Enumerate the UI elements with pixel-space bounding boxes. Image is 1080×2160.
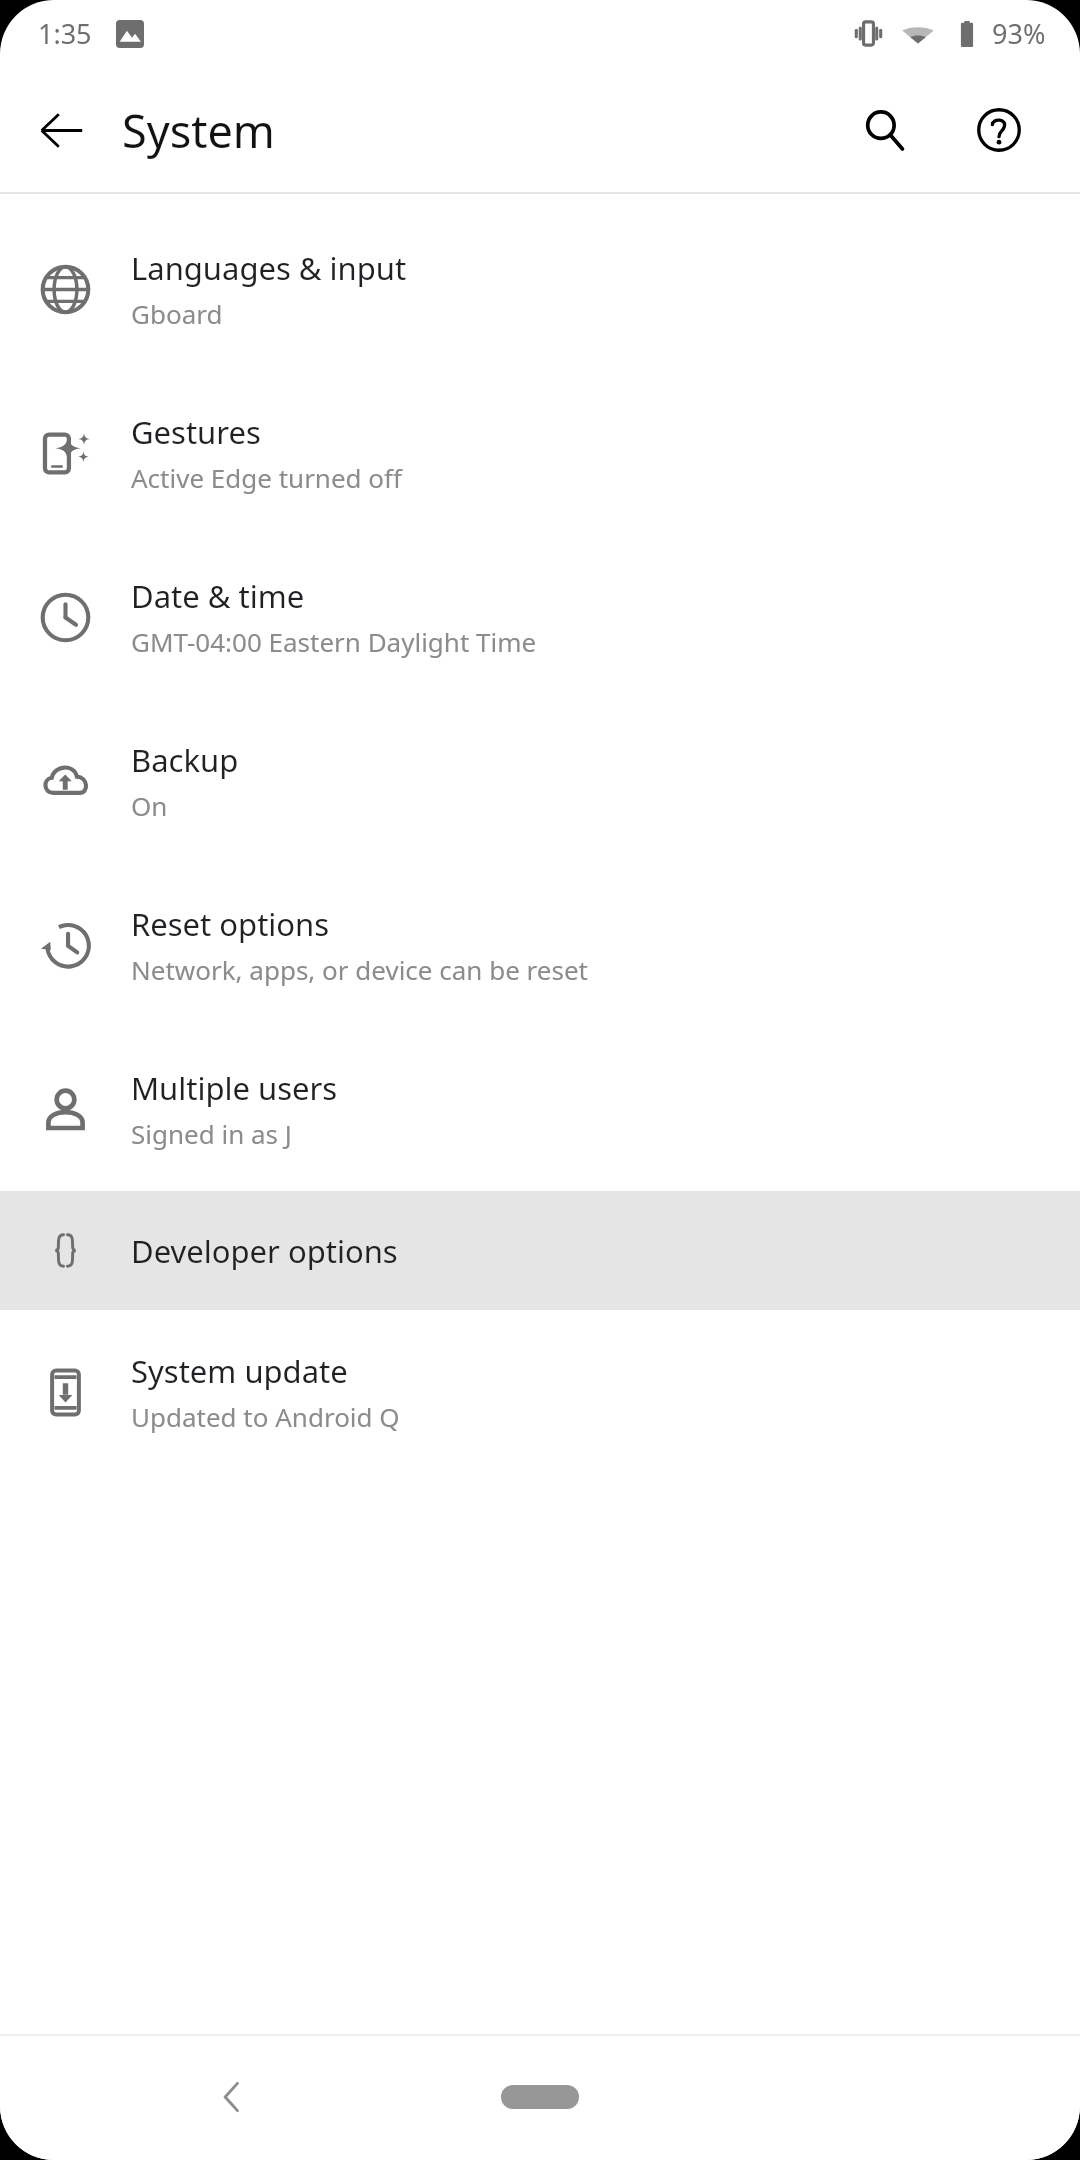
staticText: Developer options [131,1230,398,1272]
button[interactable]: Search [828,66,940,194]
button[interactable]: Back [0,66,122,194]
button[interactable]: Multiple users [0,1027,1080,1191]
staticText: Languages & input [131,247,407,289]
button[interactable]: Back [190,2055,274,2139]
staticText: 93% [992,15,1046,52]
staticText: GMT-04:00 Eastern Daylight Time [131,624,537,659]
staticText: Network, apps, or device can be reset [131,952,588,987]
button[interactable]: Languages & input [0,207,1080,371]
button[interactable]: Gestures [0,371,1080,535]
button[interactable]: Date & time [0,535,1080,699]
staticText: Active Edge turned off [131,460,402,495]
staticText: Signed in as J [131,1116,292,1151]
staticText: Backup [131,739,239,781]
staticText: Gboard [131,296,223,331]
staticText: Multiple users [131,1067,338,1109]
button[interactable]: Reset options [0,863,1080,1027]
button[interactable]: System update [0,1310,1080,1474]
button[interactable]: Home [445,2055,635,2139]
staticText: On [131,788,168,823]
staticText: Gestures [131,411,261,453]
button[interactable]: Help [940,66,1058,194]
button[interactable]: Developer options [0,1191,1080,1310]
staticText: Updated to Android Q [131,1399,400,1434]
button[interactable]: Backup [0,699,1080,863]
staticText: System [122,100,275,161]
staticText: Reset options [131,903,330,945]
staticText: Date & time [131,575,305,617]
staticText: System update [131,1350,348,1392]
staticText: 1:35 [38,15,92,52]
